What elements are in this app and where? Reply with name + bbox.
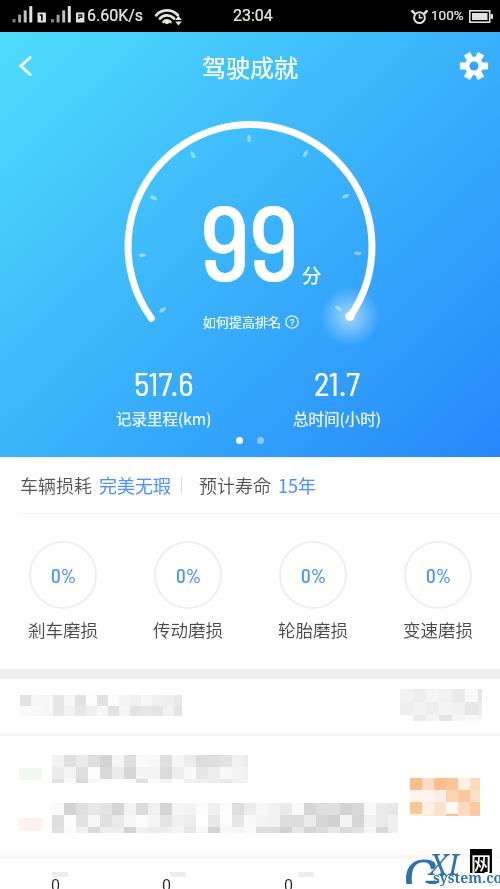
staticText: 517.6 — [134, 363, 194, 403]
staticText: 0% — [301, 564, 326, 587]
staticText: 变速磨损 — [403, 617, 473, 642]
button[interactable]: 0% — [0, 541, 125, 642]
staticText: 轮胎磨损 — [278, 617, 348, 642]
staticText: 6.60K/s — [87, 6, 144, 25]
button[interactable]: 15年 — [278, 472, 316, 498]
staticText: 网 — [471, 849, 491, 873]
staticText: system.com — [433, 868, 500, 887]
staticText: 0 — [51, 876, 60, 889]
staticText: 0 — [162, 876, 171, 889]
staticText: 0% — [176, 564, 201, 587]
staticText: 如何提高排名 — [203, 312, 282, 331]
staticText: 车辆损耗 — [20, 472, 92, 498]
staticText: 分 — [302, 261, 322, 289]
staticText: 驾驶成就 — [202, 49, 298, 84]
staticText: 15年 — [278, 472, 316, 498]
button[interactable]: Back — [0, 40, 52, 92]
staticText: 预计寿命 — [199, 472, 271, 498]
button[interactable]: Settings — [448, 40, 500, 92]
staticText: 23:04 — [233, 6, 273, 25]
staticText: 总时间(小时) — [293, 407, 381, 429]
staticText: 21.7 — [314, 363, 360, 403]
button[interactable]: 完美无瑕 — [99, 472, 171, 498]
staticText: 99 — [201, 175, 300, 302]
staticText: G — [403, 842, 441, 884]
staticText: 0% — [426, 564, 451, 587]
staticText: 0% — [51, 564, 76, 587]
button[interactable]: 0% — [250, 541, 375, 642]
staticText: XI — [429, 844, 459, 883]
staticText: 100% — [431, 7, 464, 23]
staticText: 0 — [284, 876, 293, 889]
button[interactable]: 0% — [125, 541, 250, 642]
staticText: 记录里程(km) — [116, 407, 212, 429]
staticText: 完美无瑕 — [99, 472, 171, 498]
staticText: 剎车磨损 — [28, 617, 98, 642]
staticText: 传动磨损 — [153, 617, 223, 642]
button[interactable]: 如何提高排名 — [199, 310, 303, 333]
button[interactable]: 0% — [375, 541, 500, 642]
staticText: ? — [290, 317, 295, 328]
